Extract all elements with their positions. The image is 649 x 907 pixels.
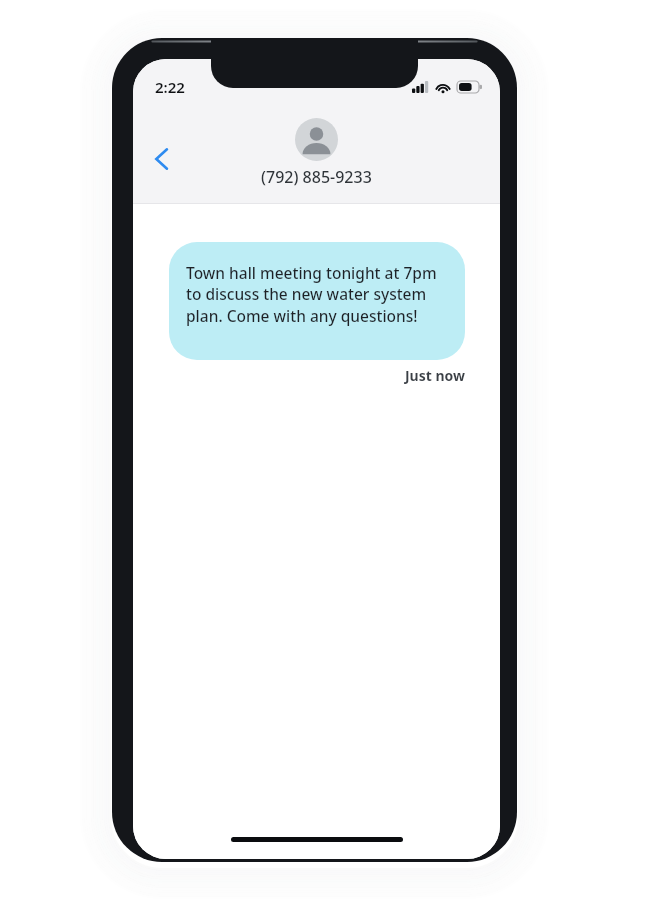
button[interactable]: Town hall meeting tonight at 7pm to disc… (169, 242, 465, 360)
button[interactable]: Back (141, 139, 181, 179)
staticText: (792) 885-9233 (261, 166, 372, 188)
button[interactable]: (792) 885-9233 (251, 116, 382, 190)
staticText: Just now (169, 366, 465, 385)
staticText: Town hall meeting tonight at 7pm to disc… (186, 262, 451, 326)
staticText: 2:22 (155, 77, 185, 97)
